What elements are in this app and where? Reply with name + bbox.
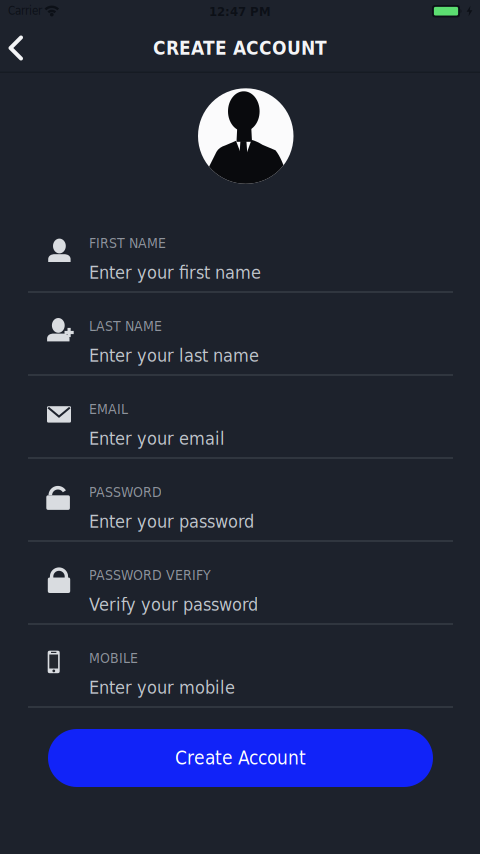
button[interactable]: Back	[0, 0, 44, 72]
staticText: MOBILE	[89, 650, 138, 666]
button[interactable]: LAST NAME	[0, 293, 480, 376]
staticText: CREATE ACCOUNT	[153, 37, 327, 59]
staticText: Enter your email	[89, 428, 225, 449]
staticText: PASSWORD	[89, 484, 162, 500]
staticText: Carrier	[8, 4, 42, 17]
button[interactable]: FIRST NAME	[0, 210, 480, 293]
staticText: 12:47 PM	[209, 4, 271, 19]
button[interactable]: MOBILE	[0, 625, 480, 708]
button[interactable]: Create Account	[48, 729, 433, 787]
staticText: Create Account	[175, 747, 306, 769]
staticText: PASSWORD VERIFY	[89, 567, 211, 583]
staticText: LAST NAME	[89, 318, 162, 334]
staticText: EMAIL	[89, 401, 128, 417]
staticText: Enter your mobile	[89, 677, 235, 698]
button[interactable]: PASSWORD	[0, 459, 480, 542]
staticText: Verify your password	[89, 594, 258, 615]
staticText: Enter your first name	[89, 262, 261, 283]
staticText: Enter your password	[89, 511, 254, 532]
staticText: Enter your last name	[89, 345, 259, 366]
button[interactable]: PASSWORD VERIFY	[0, 542, 480, 625]
button[interactable]: EMAIL	[0, 376, 480, 459]
staticText: FIRST NAME	[89, 235, 166, 251]
